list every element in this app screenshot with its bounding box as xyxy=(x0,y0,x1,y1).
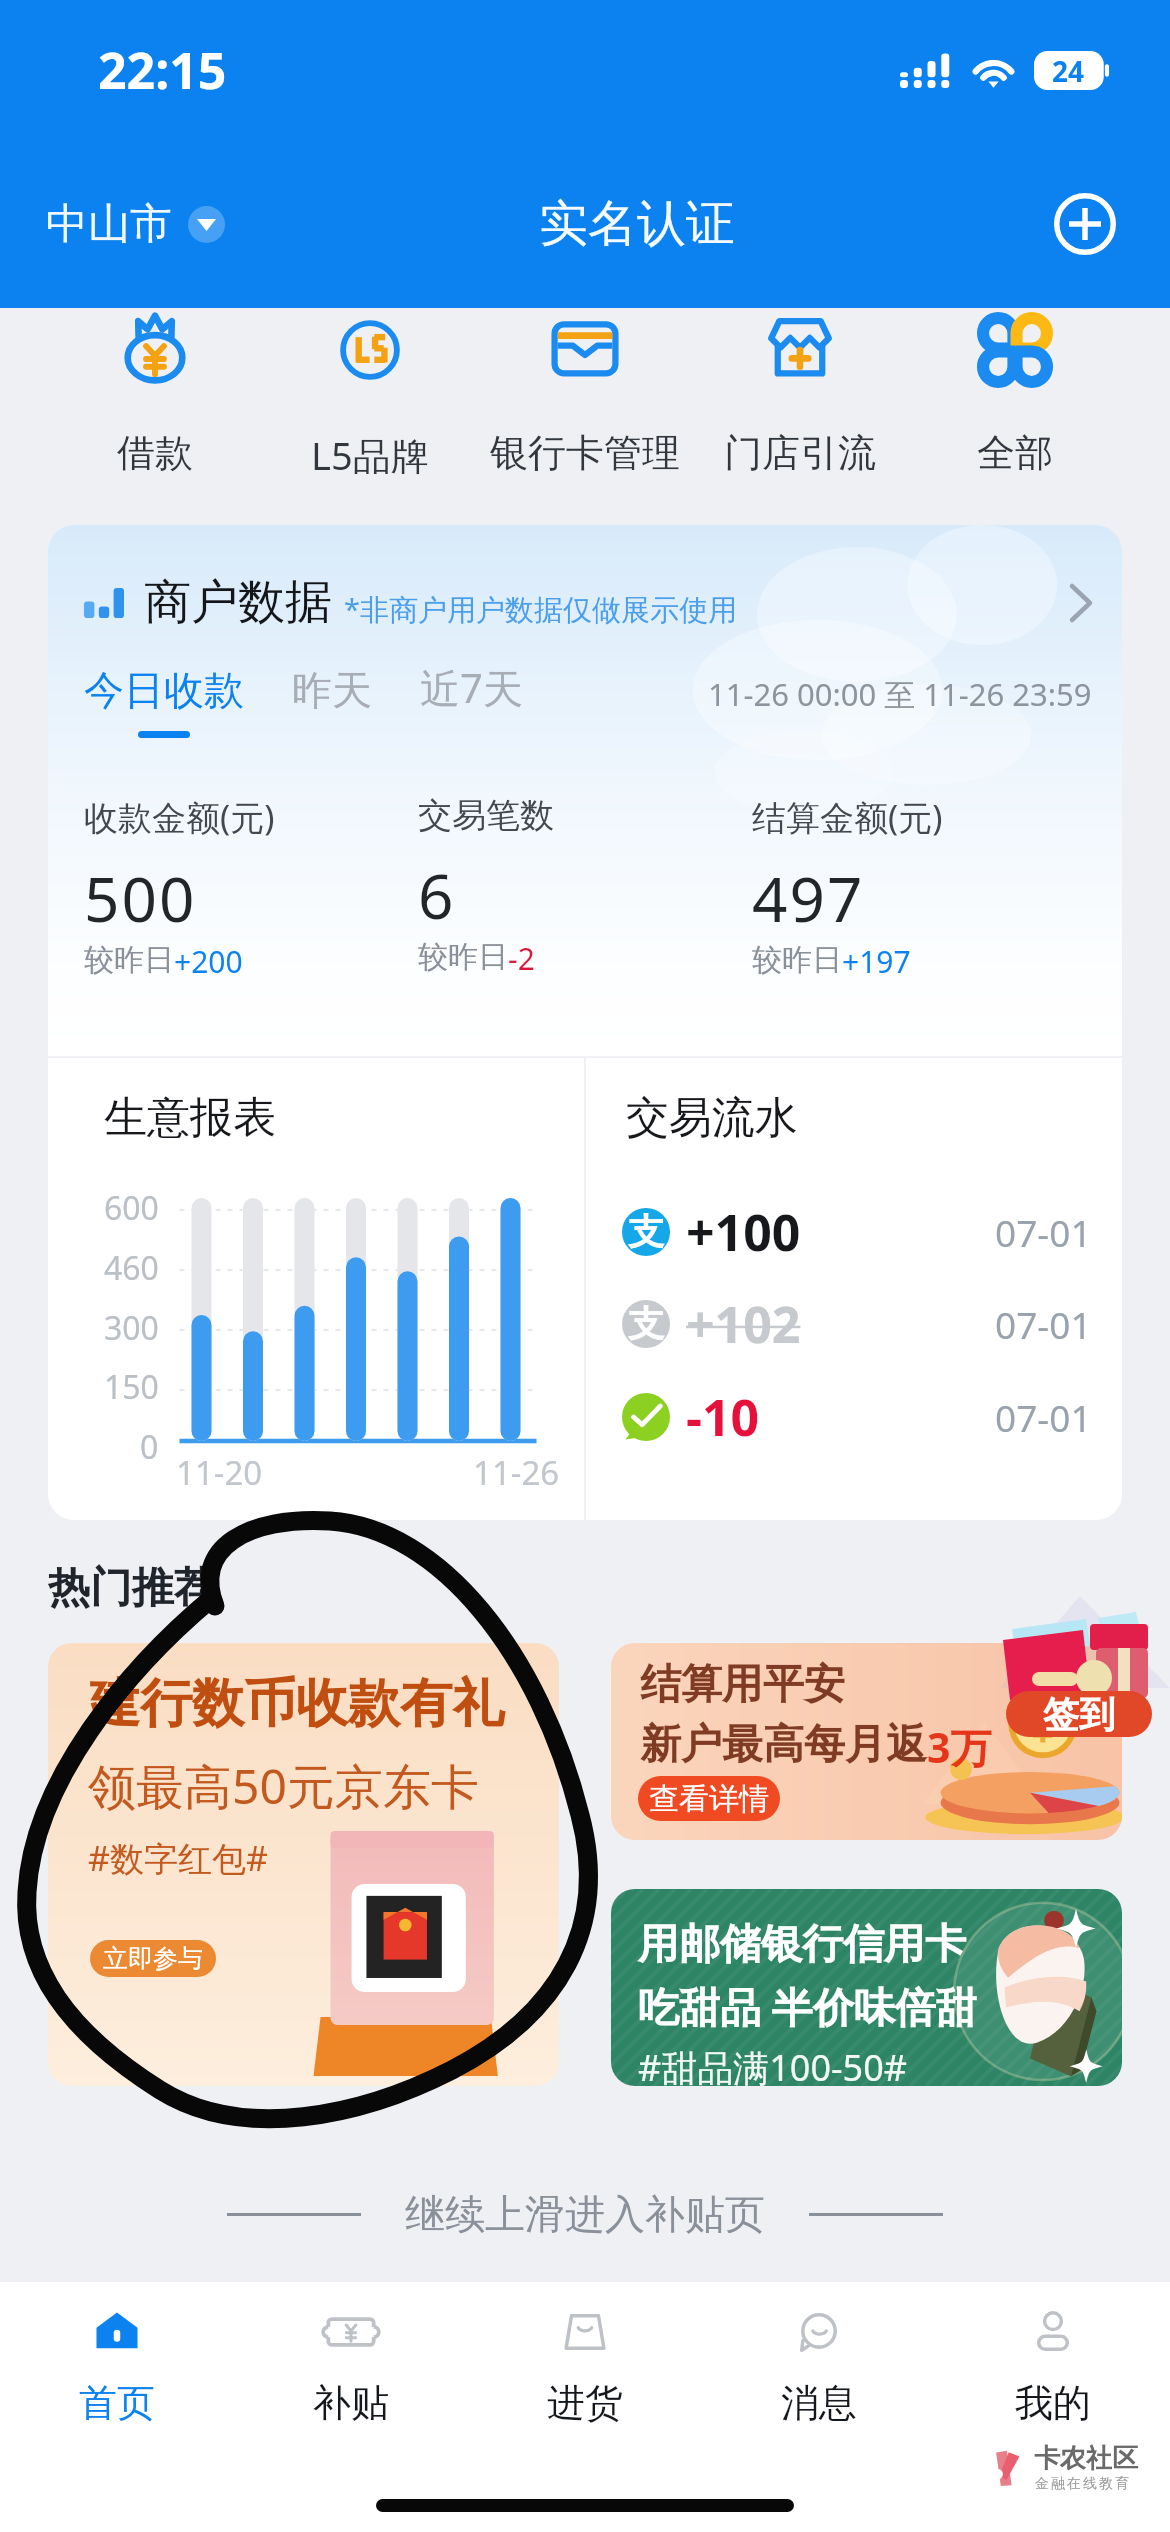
staticText: 立即参与 xyxy=(103,1943,203,1974)
staticText: 新户最高每月返 xyxy=(640,1719,927,1771)
staticText: 卡农社区 xyxy=(1034,2442,1138,2475)
button[interactable]: 进货 xyxy=(468,2282,702,2442)
button[interactable]: 首页 xyxy=(0,2282,234,2442)
staticText: 收款金额(元) xyxy=(84,794,275,840)
button[interactable]: Add xyxy=(1044,183,1126,265)
button[interactable]: 昨天 xyxy=(292,665,372,738)
staticText: 11-20 xyxy=(176,1450,263,1495)
staticText: 24 xyxy=(1052,52,1085,90)
staticText: 建行数币收款有礼 xyxy=(88,1671,504,1737)
staticText: -10 xyxy=(686,1383,760,1451)
staticText: 600 xyxy=(104,1186,159,1230)
staticText: 150 xyxy=(104,1365,159,1409)
staticText: 交易流水 xyxy=(626,1091,798,1145)
staticText: 商户数据 xyxy=(144,573,332,632)
button[interactable]: 我的 xyxy=(936,2282,1170,2442)
staticText: 07-01 xyxy=(995,1207,1092,1257)
button[interactable]: 结算用平安 xyxy=(611,1643,1122,1840)
staticText: 支 xyxy=(628,1301,664,1346)
staticText: 500 xyxy=(84,856,197,940)
staticText: 吃甜品 半价味倍甜 xyxy=(638,1978,977,2034)
staticText: +200 xyxy=(174,941,243,982)
staticText: 11-26 00:00 至 11-26 23:59 xyxy=(708,673,1092,715)
staticText: 用邮储银行信用卡 xyxy=(638,1919,966,1971)
staticText: +102 xyxy=(686,1290,801,1358)
staticText: 查看详情 xyxy=(649,1780,769,1818)
button[interactable]: 商户数据 xyxy=(84,573,1092,632)
staticText: 较昨日 xyxy=(84,941,174,979)
staticText: +197 xyxy=(842,941,911,982)
staticText: 中山市 xyxy=(46,198,172,251)
staticText: 领最高50元京东卡 xyxy=(88,1753,479,1819)
staticText: 生意报表 xyxy=(104,1091,276,1145)
staticText: 支 xyxy=(628,1209,664,1254)
button[interactable]: 用邮储银行信用卡 xyxy=(611,1889,1122,2086)
staticText: +100 xyxy=(686,1198,801,1266)
staticText: 460 xyxy=(104,1246,159,1290)
button[interactable]: 建行数币收款有礼 xyxy=(48,1643,559,2086)
button[interactable]: Sign in xyxy=(1006,1691,1152,1737)
staticText: 07-01 xyxy=(995,1392,1092,1442)
staticText: 补贴 xyxy=(313,2379,389,2427)
staticText: 11-26 xyxy=(473,1450,560,1495)
staticText: 较昨日 xyxy=(752,941,842,979)
staticText: #数字红包# xyxy=(88,1835,268,1881)
button[interactable]: L5品牌 xyxy=(262,308,477,525)
button[interactable]: -10 xyxy=(622,1383,1092,1451)
button[interactable]: 门店引流 xyxy=(692,308,907,525)
staticText: 300 xyxy=(104,1306,159,1350)
staticText: 门店引流 xyxy=(724,429,876,477)
staticText: 银行卡管理 xyxy=(490,429,680,477)
staticText: 07-01 xyxy=(995,1299,1092,1349)
staticText: #甜品满100-50# xyxy=(638,2043,908,2086)
button[interactable]: 借款 xyxy=(48,308,262,525)
staticText: L5品牌 xyxy=(311,429,429,481)
staticText: *非商户用户数据仅做展示使用 xyxy=(344,589,737,629)
staticText: 签到 xyxy=(1043,1692,1115,1737)
staticText: 497 xyxy=(752,856,865,940)
staticText: 金融在线教育 xyxy=(1034,2475,1130,2493)
staticText: 全部 xyxy=(977,429,1053,477)
staticText: 进货 xyxy=(547,2379,623,2427)
staticText: 今日收款 xyxy=(84,665,244,715)
staticText: 交易笔数 xyxy=(418,794,554,837)
staticText: 消息 xyxy=(781,2379,857,2427)
staticText: 热门推荐 xyxy=(48,1562,216,1615)
staticText: 继续上滑进入补贴页 xyxy=(405,2189,765,2239)
staticText: 较昨日 xyxy=(418,938,508,976)
button[interactable]: 银行卡管理 xyxy=(477,308,692,525)
staticText: 借款 xyxy=(117,429,193,477)
staticText: 22:15 xyxy=(98,36,227,104)
button[interactable]: 全部 xyxy=(907,308,1122,525)
button[interactable]: 消息 xyxy=(702,2282,936,2442)
staticText: 0 xyxy=(140,1425,159,1469)
button[interactable]: 近7天 xyxy=(420,660,523,738)
staticText: 6 xyxy=(418,853,456,937)
staticText: -2 xyxy=(508,938,535,979)
button[interactable]: 支 xyxy=(622,1198,1092,1266)
button[interactable]: 中山市 xyxy=(40,192,231,257)
button[interactable]: 今日收款 xyxy=(84,665,244,738)
staticText: 首页 xyxy=(79,2379,155,2427)
staticText: 结算金额(元) xyxy=(752,794,943,840)
staticText: 实名认证 xyxy=(539,193,735,255)
button[interactable]: 补贴 xyxy=(234,2282,468,2442)
staticText: 3万 xyxy=(927,1719,992,1775)
staticText: 结算用平安 xyxy=(640,1659,845,1711)
staticText: 我的 xyxy=(1015,2379,1091,2427)
button[interactable]: 支 xyxy=(622,1290,1092,1358)
